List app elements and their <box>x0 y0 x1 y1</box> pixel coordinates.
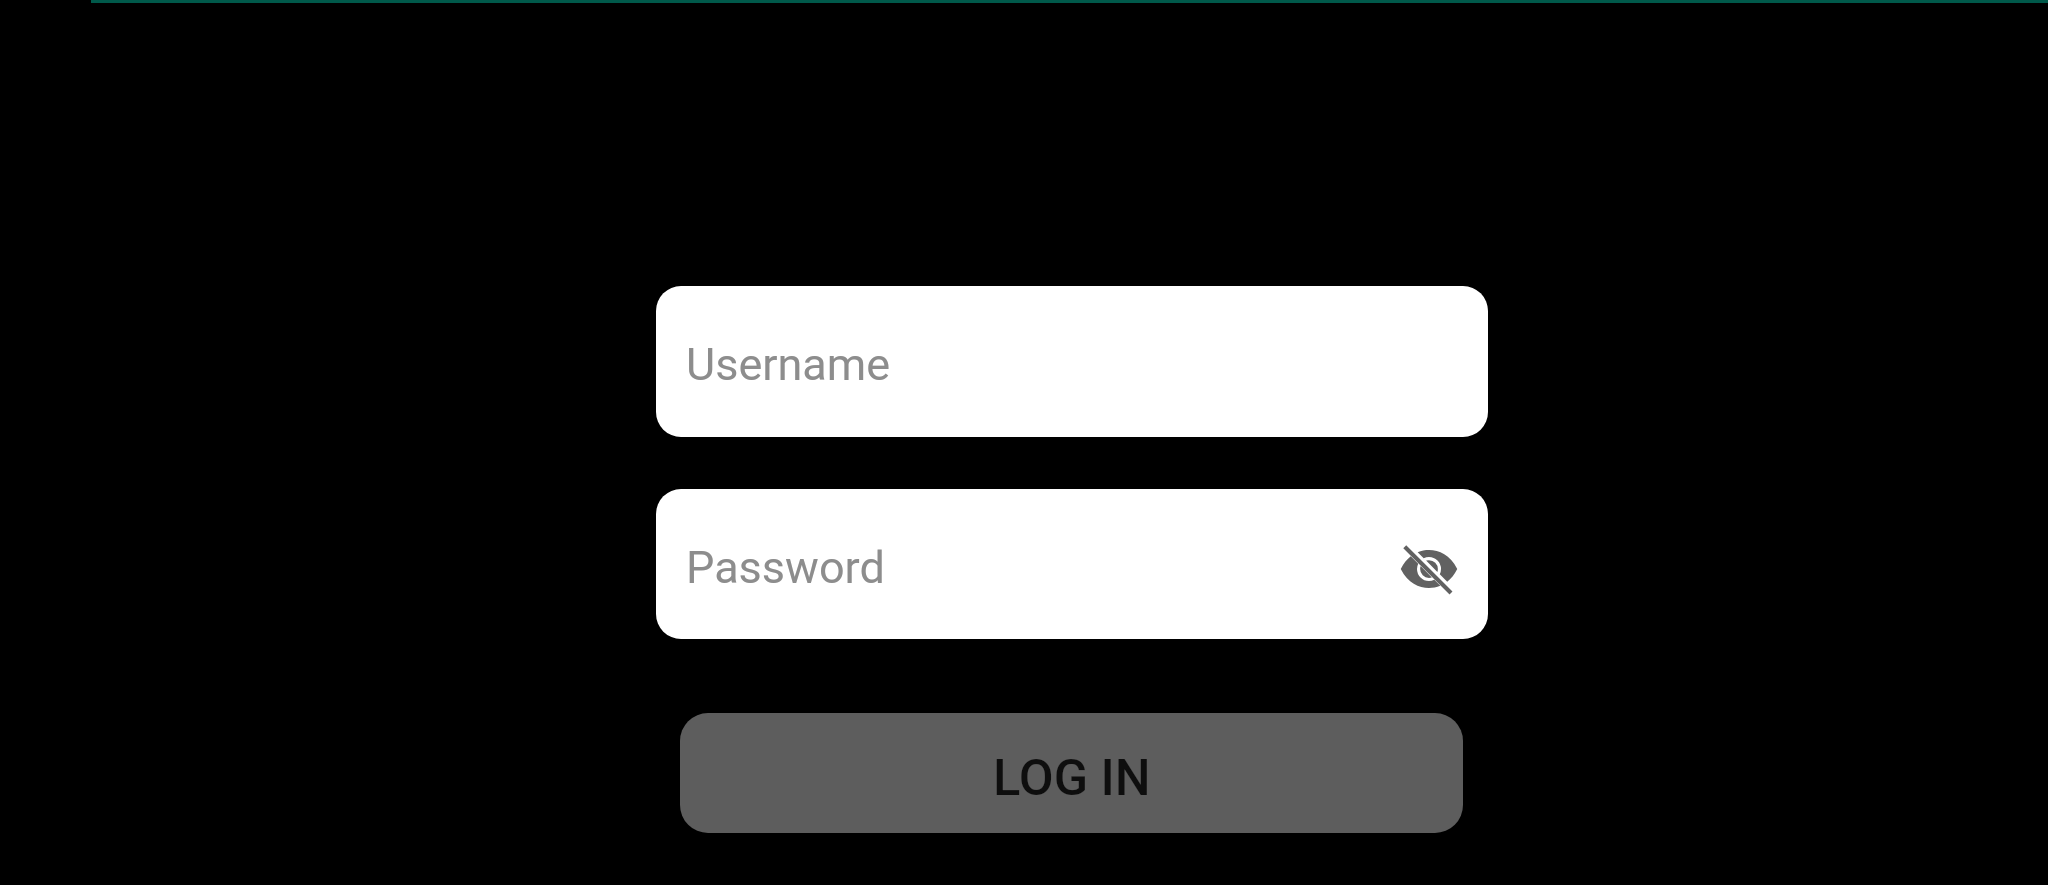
staticText: LOG IN <box>993 748 1151 807</box>
staticText: Username <box>686 338 891 391</box>
button[interactable]: Username <box>656 286 1488 437</box>
button[interactable]: Password <box>656 489 1488 639</box>
staticText: Password <box>686 541 885 594</box>
button[interactable]: LOG IN <box>680 713 1463 833</box>
button[interactable]: Show password <box>1391 531 1467 607</box>
